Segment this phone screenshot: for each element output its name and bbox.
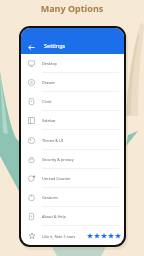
staticText: Security & privacy: [42, 157, 74, 162]
button[interactable]: Theme & UI: [21, 131, 124, 150]
button[interactable]: Gestures: [21, 188, 124, 207]
button[interactable]: Back: [26, 42, 37, 53]
button[interactable]: Unread Counter: [21, 169, 124, 188]
button[interactable]: Desktop: [21, 54, 124, 73]
button[interactable]: Security & privacy: [21, 150, 124, 169]
button[interactable]: About & Help: [21, 207, 124, 226]
staticText: Drawer: [42, 80, 56, 85]
staticText: Clock: [42, 99, 52, 104]
staticText: About & Help: [42, 214, 66, 219]
staticText: Gestures: [42, 195, 58, 200]
button[interactable]: Clock: [21, 92, 124, 111]
button[interactable]: Drawer: [21, 73, 124, 92]
staticText: Like it, Rate 5 stars: [42, 234, 76, 239]
staticText: Settings: [44, 42, 66, 50]
button[interactable]: Sidebar: [21, 111, 124, 130]
staticText: Theme & UI: [42, 138, 64, 143]
button[interactable]: Like it, Rate 5 stars: [21, 226, 124, 245]
staticText: Many Options: [0, 2, 144, 14]
staticText: Unread Counter: [42, 176, 71, 181]
staticText: Desktop: [42, 61, 57, 66]
staticText: Sidebar: [42, 118, 56, 123]
